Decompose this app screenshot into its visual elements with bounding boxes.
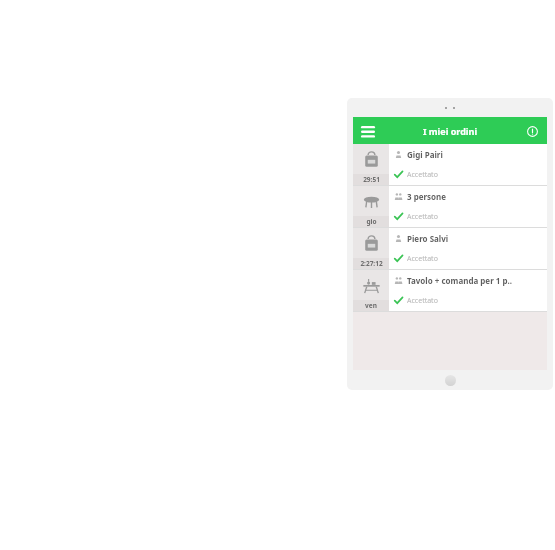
button[interactable]: 2:27:12 — [353, 228, 547, 270]
staticText: Tavolo + comanda per 1 p.. — [407, 275, 512, 286]
staticText: Accettato — [407, 254, 438, 264]
staticText: ven — [365, 301, 377, 310]
staticText: Accettato — [407, 296, 438, 306]
staticText: 2:27:12 — [360, 259, 383, 268]
button[interactable]: Menu — [358, 121, 378, 141]
button[interactable]: gio — [353, 186, 547, 228]
staticText: Accettato — [407, 170, 438, 180]
staticText: 3 persone — [407, 191, 447, 202]
staticText: gio — [366, 217, 377, 226]
staticText: Gigi Pairi — [407, 149, 443, 160]
button[interactable]: Info — [523, 122, 541, 140]
staticText: I miei ordini — [423, 125, 478, 137]
staticText: Accettato — [407, 212, 438, 222]
staticText: Piero Salvi — [407, 233, 449, 244]
staticText: 29:51 — [363, 175, 380, 184]
button[interactable]: ven — [353, 270, 547, 312]
button[interactable]: 29:51 — [353, 144, 547, 186]
